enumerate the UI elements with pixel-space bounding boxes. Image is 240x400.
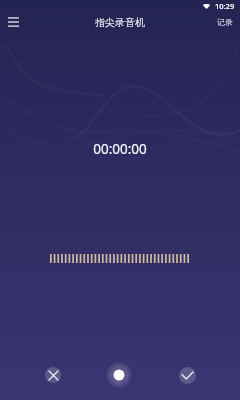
staticText: 00:00:00 [0, 140, 240, 158]
staticText: 记录 [217, 17, 233, 27]
button[interactable]: Menu [0, 9, 26, 35]
staticText: 10:29 [215, 1, 235, 11]
button[interactable]: 记录 [209, 9, 240, 35]
button[interactable]: Cancel [45, 367, 61, 383]
button[interactable]: Done [179, 367, 196, 384]
button[interactable]: Record [106, 362, 132, 388]
staticText: 指尖录音机 [95, 16, 145, 29]
